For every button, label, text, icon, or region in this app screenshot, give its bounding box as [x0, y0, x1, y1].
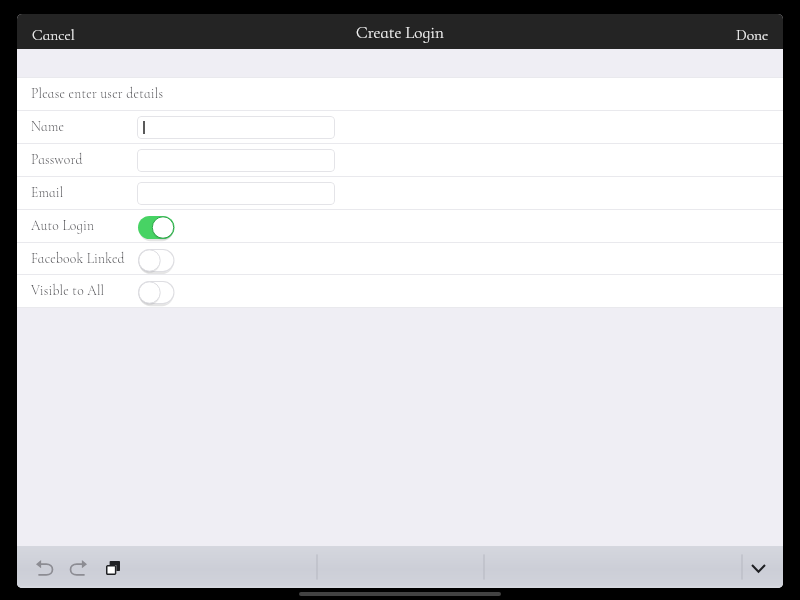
- button[interactable]: Done: [724, 14, 783, 49]
- button[interactable]: Switch off: [138, 277, 175, 305]
- button[interactable]: Switch off: [138, 245, 175, 273]
- button[interactable]: Undo: [27, 550, 61, 584]
- staticText: Name: [31, 118, 137, 134]
- staticText: Email: [31, 184, 137, 200]
- button[interactable]: Email: [17, 177, 783, 209]
- button[interactable]: Name: [17, 111, 783, 143]
- staticText: Facebook Linked: [31, 250, 138, 266]
- staticText: Please enter user details: [31, 85, 164, 101]
- button[interactable]: Password: [17, 144, 783, 176]
- button[interactable]: Hide keyboard: [741, 550, 775, 584]
- staticText: Visible to All: [31, 282, 138, 298]
- staticText: Password: [31, 151, 137, 167]
- staticText: Done: [736, 26, 769, 45]
- button[interactable]: Facebook Linked: [17, 243, 783, 274]
- staticText: Cancel: [32, 26, 75, 45]
- button[interactable]: Copy: [96, 550, 130, 584]
- button[interactable]: Auto Login: [17, 210, 783, 242]
- staticText: Auto Login: [31, 217, 138, 233]
- button[interactable]: Cancel: [17, 14, 87, 49]
- staticText: Create Login: [356, 22, 444, 43]
- button[interactable]: Switch on: [138, 212, 175, 240]
- button[interactable]: Redo: [61, 550, 95, 584]
- button[interactable]: Visible to All: [17, 275, 783, 307]
